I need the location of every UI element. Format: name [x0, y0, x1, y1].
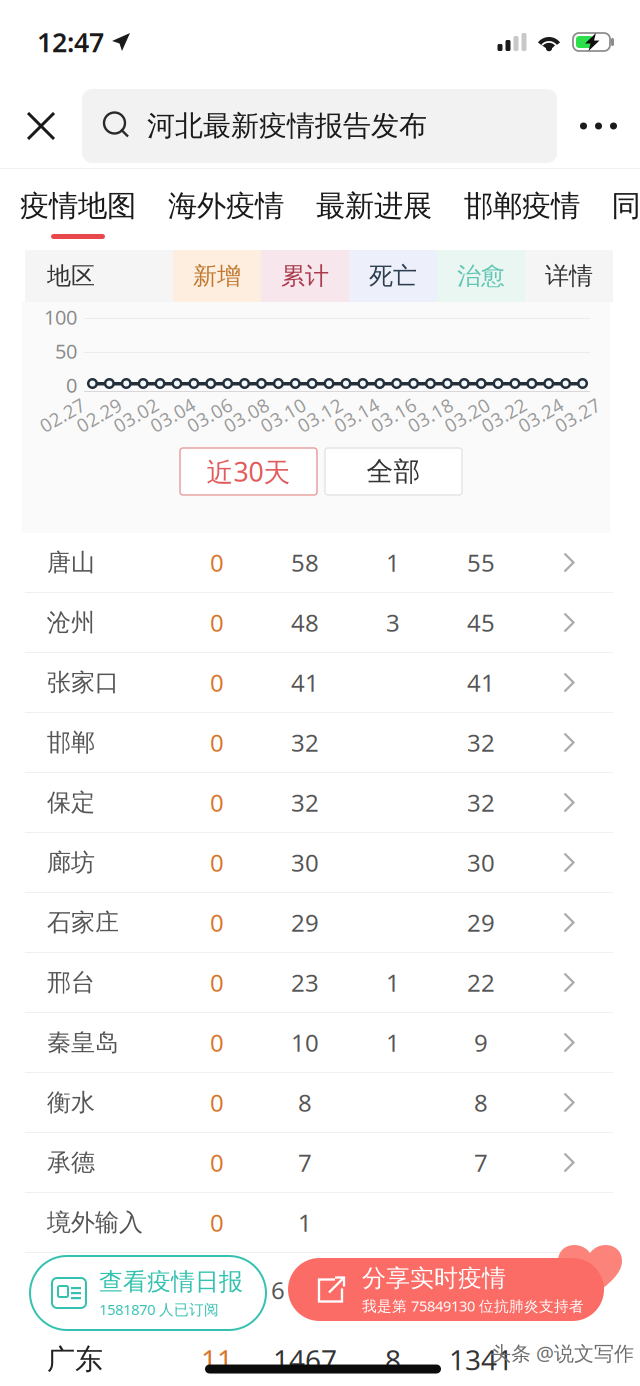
staticText: 32	[467, 727, 495, 758]
button[interactable]: 唐山	[0, 533, 640, 593]
staticText: 8	[474, 1087, 488, 1118]
staticText: 最新进展	[316, 188, 432, 224]
button[interactable]: 邢台	[0, 953, 640, 1013]
staticText: 0	[210, 547, 224, 578]
staticText: 我是第 75849130 位抗肺炎支持者	[362, 1296, 584, 1315]
staticText: 03.12	[295, 403, 344, 427]
staticText: 0	[210, 1147, 224, 1178]
staticText: 衡水	[47, 1088, 95, 1117]
staticText: 03.24	[516, 403, 565, 427]
staticText: 32	[291, 787, 319, 818]
button[interactable]: 廊坊	[0, 833, 640, 893]
button[interactable]: 邯郸	[0, 713, 640, 773]
button[interactable]: 分享实时疫情	[288, 1258, 604, 1321]
staticText: 0	[210, 607, 224, 638]
button[interactable]: 河北最新疫情报告发布	[82, 89, 557, 163]
staticText: 近30天	[206, 454, 290, 489]
staticText: 境外输入	[47, 1208, 143, 1237]
staticText: 秦皇岛	[47, 1028, 119, 1057]
staticText: 03.08	[222, 403, 271, 427]
staticText: 1581870 人已订阅	[99, 1299, 219, 1319]
staticText: 0	[210, 787, 224, 818]
staticText: 0	[210, 1087, 224, 1118]
staticText: 唐山	[47, 548, 95, 577]
staticText: 地区	[47, 261, 95, 291]
staticText: 8	[385, 1341, 401, 1378]
staticText: 死亡	[369, 261, 417, 291]
button[interactable]: 查看疫情日报	[30, 1256, 266, 1330]
staticText: 张家口	[47, 668, 119, 697]
staticText: 邯郸疫情	[464, 188, 580, 224]
staticText: 58	[291, 547, 319, 578]
staticText: 0	[210, 727, 224, 758]
staticText: 0	[210, 1207, 224, 1238]
button[interactable]: More	[557, 84, 640, 168]
button[interactable]: 沧州	[0, 593, 640, 653]
staticText: 03.20	[443, 403, 492, 427]
staticText: 30	[291, 847, 319, 878]
staticText: 全部	[366, 455, 420, 488]
button[interactable]: 近30天	[180, 448, 317, 495]
staticText: 保定	[47, 788, 95, 817]
staticText: 02.27	[38, 403, 87, 427]
button[interactable]: 承德	[0, 1133, 640, 1193]
staticText: 9	[474, 1027, 488, 1058]
staticText: 1	[386, 967, 400, 998]
button[interactable]: 秦皇岛	[0, 1013, 640, 1073]
staticText: 02.29	[75, 403, 124, 427]
button[interactable]: 张家口	[0, 653, 640, 713]
staticText: 沧州	[47, 608, 95, 637]
button[interactable]: 海外疫情	[168, 169, 284, 250]
staticText: 海外疫情	[168, 188, 284, 224]
staticText: 10	[291, 1027, 319, 1058]
staticText: 1467	[273, 1341, 337, 1378]
staticText: 45	[467, 607, 495, 638]
staticText: 头条 @说文写作	[491, 1340, 634, 1366]
staticText: 1	[386, 547, 400, 578]
staticText: 03.14	[332, 403, 381, 427]
staticText: 03.16	[369, 403, 418, 427]
staticText: 疫情地图	[20, 188, 136, 224]
staticText: 03.22	[479, 403, 528, 427]
staticText: 承德	[47, 1148, 95, 1177]
staticText: 分享实时疫情	[362, 1263, 506, 1293]
staticText: 0	[210, 907, 224, 938]
staticText: 03.10	[259, 403, 308, 427]
staticText: 同	[611, 188, 640, 224]
button[interactable]: Close	[0, 84, 82, 168]
button[interactable]: 最新进展	[316, 169, 432, 250]
staticText: 0	[210, 967, 224, 998]
staticText: 邯郸	[47, 728, 95, 757]
staticText: 邢台	[47, 968, 95, 997]
staticText: 廊坊	[47, 848, 95, 877]
button[interactable]: 邯郸疫情	[464, 169, 580, 250]
button[interactable]: 全部	[325, 448, 462, 495]
staticText: 12:47	[37, 24, 104, 60]
staticText: 6	[271, 1274, 285, 1306]
staticText: 3	[386, 607, 400, 638]
staticText: 1	[386, 1027, 400, 1058]
button[interactable]: 境外输入	[0, 1193, 640, 1253]
staticText: 50	[55, 338, 77, 364]
staticText: 30	[467, 847, 495, 878]
staticText: 41	[467, 667, 495, 698]
staticText: 22	[467, 967, 495, 998]
button[interactable]: 同	[599, 169, 640, 250]
staticText: 详情	[545, 261, 593, 291]
button[interactable]: 衡水	[0, 1073, 640, 1133]
button[interactable]: 疫情地图	[20, 169, 136, 250]
button[interactable]: 石家庄	[0, 893, 640, 953]
staticText: 7	[298, 1147, 312, 1178]
staticText: 1341	[449, 1341, 513, 1378]
staticText: 29	[291, 907, 319, 938]
staticText: 41	[291, 667, 319, 698]
staticText: 03.04	[148, 403, 197, 427]
button[interactable]: 保定	[0, 773, 640, 833]
staticText: 29	[467, 907, 495, 938]
staticText: 0	[66, 372, 77, 398]
staticText: 32	[467, 787, 495, 818]
staticText: 11	[201, 1341, 233, 1378]
staticText: 03.02	[111, 403, 160, 427]
staticText: 河北最新疫情报告发布	[147, 109, 427, 143]
staticText: 1	[298, 1207, 312, 1238]
